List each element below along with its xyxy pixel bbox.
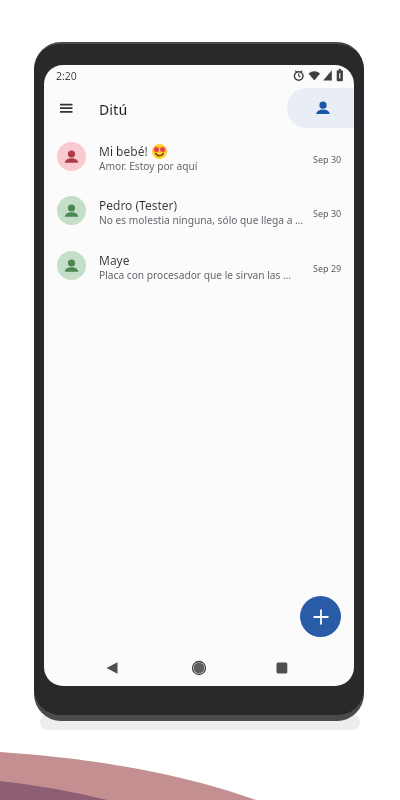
staticText: Ditú <box>99 100 128 119</box>
button[interactable]: Pedro (Tester) <box>44 184 354 237</box>
button[interactable]: Maye <box>44 239 354 292</box>
button[interactable] <box>60 102 73 115</box>
button[interactable] <box>287 88 354 128</box>
staticText: Placa con procesador que le sirvan las … <box>99 268 292 282</box>
staticText: Sep 30 <box>313 153 342 165</box>
button[interactable]: Mi bebé! <box>44 130 354 183</box>
button[interactable] <box>188 657 210 679</box>
button[interactable] <box>300 596 341 637</box>
staticText: Mi bebé! <box>99 143 148 159</box>
staticText: Sep 30 <box>313 207 342 219</box>
staticText: Amor. Estoy por aquí <box>99 159 198 173</box>
button[interactable] <box>101 657 123 679</box>
button[interactable] <box>271 657 293 679</box>
staticText: No es molestia ninguna, sólo que llega a… <box>99 213 304 227</box>
staticText: Sep 29 <box>313 262 342 274</box>
staticText: Pedro (Tester) <box>99 197 178 213</box>
staticText: Maye <box>99 252 130 268</box>
staticText: 2:20 <box>56 69 77 83</box>
